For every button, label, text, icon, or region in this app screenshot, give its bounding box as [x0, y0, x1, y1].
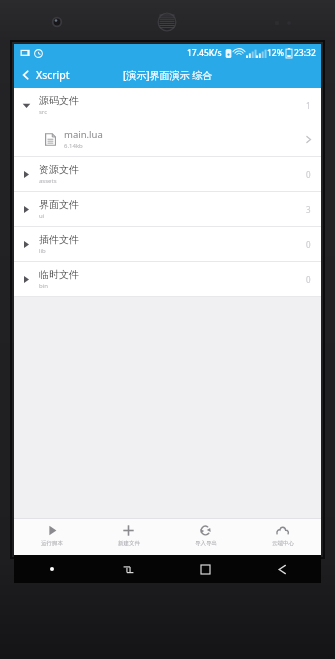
staticText: 0 [306, 169, 311, 180]
staticText: 3 [306, 204, 311, 215]
staticText: ui [39, 212, 45, 220]
staticText: 源码文件 [39, 94, 79, 107]
staticText: 云端中心 [272, 540, 294, 547]
staticText: 资源文件 [39, 163, 79, 176]
staticText: 运行脚本 [41, 540, 63, 547]
other: Collapse [22, 101, 31, 110]
button[interactable]: 云端中心 [244, 519, 321, 555]
staticText: src [39, 108, 48, 116]
staticText: 17.45K/s [187, 47, 222, 59]
button[interactable]: main.lua [14, 122, 321, 156]
other: Expand [22, 275, 31, 284]
button[interactable]: Expand [14, 262, 321, 296]
other: Menu dot [50, 567, 54, 571]
other: Open [304, 135, 313, 144]
staticText: 0 [306, 239, 311, 250]
button[interactable]: 导入导出 [167, 519, 244, 555]
staticText: lib [39, 247, 46, 255]
button[interactable]: Expand [14, 192, 321, 226]
button[interactable]: Recents [167, 555, 244, 583]
staticText: [演示]界面演示 综合 [123, 68, 213, 82]
staticText: 插件文件 [39, 233, 79, 246]
staticText: 新建文件 [118, 540, 140, 547]
staticText: main.lua [64, 128, 103, 141]
staticText: 1 [306, 100, 311, 111]
staticText: 导入导出 [195, 540, 217, 547]
button[interactable]: Back [244, 555, 321, 583]
button[interactable]: Expand [14, 157, 321, 191]
staticText: Xscript [36, 68, 70, 82]
staticText: bin [39, 282, 48, 290]
button[interactable]: Collapse [14, 88, 321, 122]
staticText: assets [39, 177, 57, 185]
staticText: 12% [267, 47, 284, 59]
other: Expand [22, 240, 31, 249]
staticText: 临时文件 [39, 268, 79, 281]
staticText: 6.14kb [64, 142, 83, 150]
button[interactable]: Switch app [90, 555, 167, 583]
staticText: 界面文件 [39, 198, 79, 211]
button[interactable]: 运行脚本 [14, 519, 90, 555]
button[interactable]: 新建文件 [90, 519, 167, 555]
button[interactable]: Expand [14, 227, 321, 261]
staticText: 23:32 [294, 47, 316, 59]
other: Expand [22, 205, 31, 214]
staticText: 0 [306, 274, 311, 285]
other: Expand [22, 170, 31, 179]
button[interactable]: Xscript [14, 64, 77, 86]
